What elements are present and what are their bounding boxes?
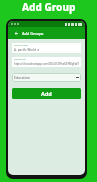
staticText: Add Groups [22,31,44,36]
staticText: Group Link [14,58,26,61]
button[interactable]: Education [12,73,81,82]
staticText: A- pacific World -e [14,48,40,52]
button[interactable]: Back [12,29,20,37]
staticText: https://chat.whatsapp.com/DCkO5DYhdGFlWl… [14,62,79,66]
button[interactable]: Add [12,88,81,99]
button[interactable]: Group Link [12,57,81,67]
staticText: Group Name [14,44,28,47]
staticText: Education [14,75,30,80]
staticText: Add Group [22,0,76,14]
button[interactable]: Group Name [12,43,81,53]
staticText: Add [41,90,52,97]
